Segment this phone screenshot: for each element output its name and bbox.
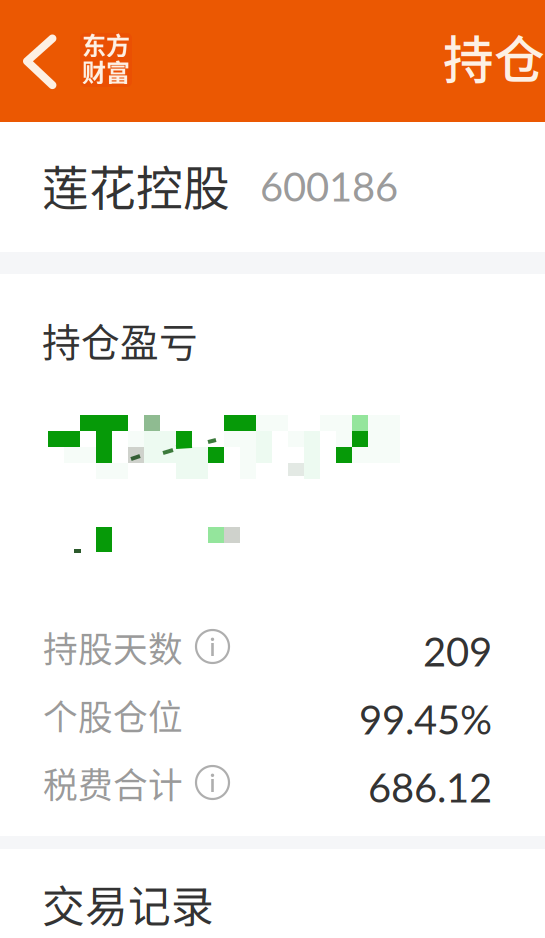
staticText: 个股仓位 — [43, 690, 183, 740]
staticText: 持仓盈亏 — [42, 312, 198, 368]
staticText: 686.12 — [368, 763, 492, 811]
staticText: 持股天数 — [43, 622, 183, 672]
staticText: 交易记录 — [42, 873, 214, 935]
staticText: 财富 — [82, 54, 130, 88]
button[interactable]: 个股仓位 — [0, 685, 545, 753]
staticText: 99.45% — [359, 695, 492, 743]
staticText: 持仓 — [443, 20, 545, 93]
button[interactable]: 税费合计 — [0, 753, 545, 821]
staticText: 209 — [423, 627, 492, 675]
button[interactable]: 持股天数 — [0, 617, 545, 685]
staticText: 600186 — [260, 162, 398, 210]
button[interactable]: East Money — [0, 0, 52, 54]
staticText: 东方 — [82, 27, 130, 61]
staticText: 税费合计 — [43, 758, 183, 808]
button[interactable]: Back — [0, 0, 60, 88]
staticText: 莲花控股 — [42, 151, 230, 219]
